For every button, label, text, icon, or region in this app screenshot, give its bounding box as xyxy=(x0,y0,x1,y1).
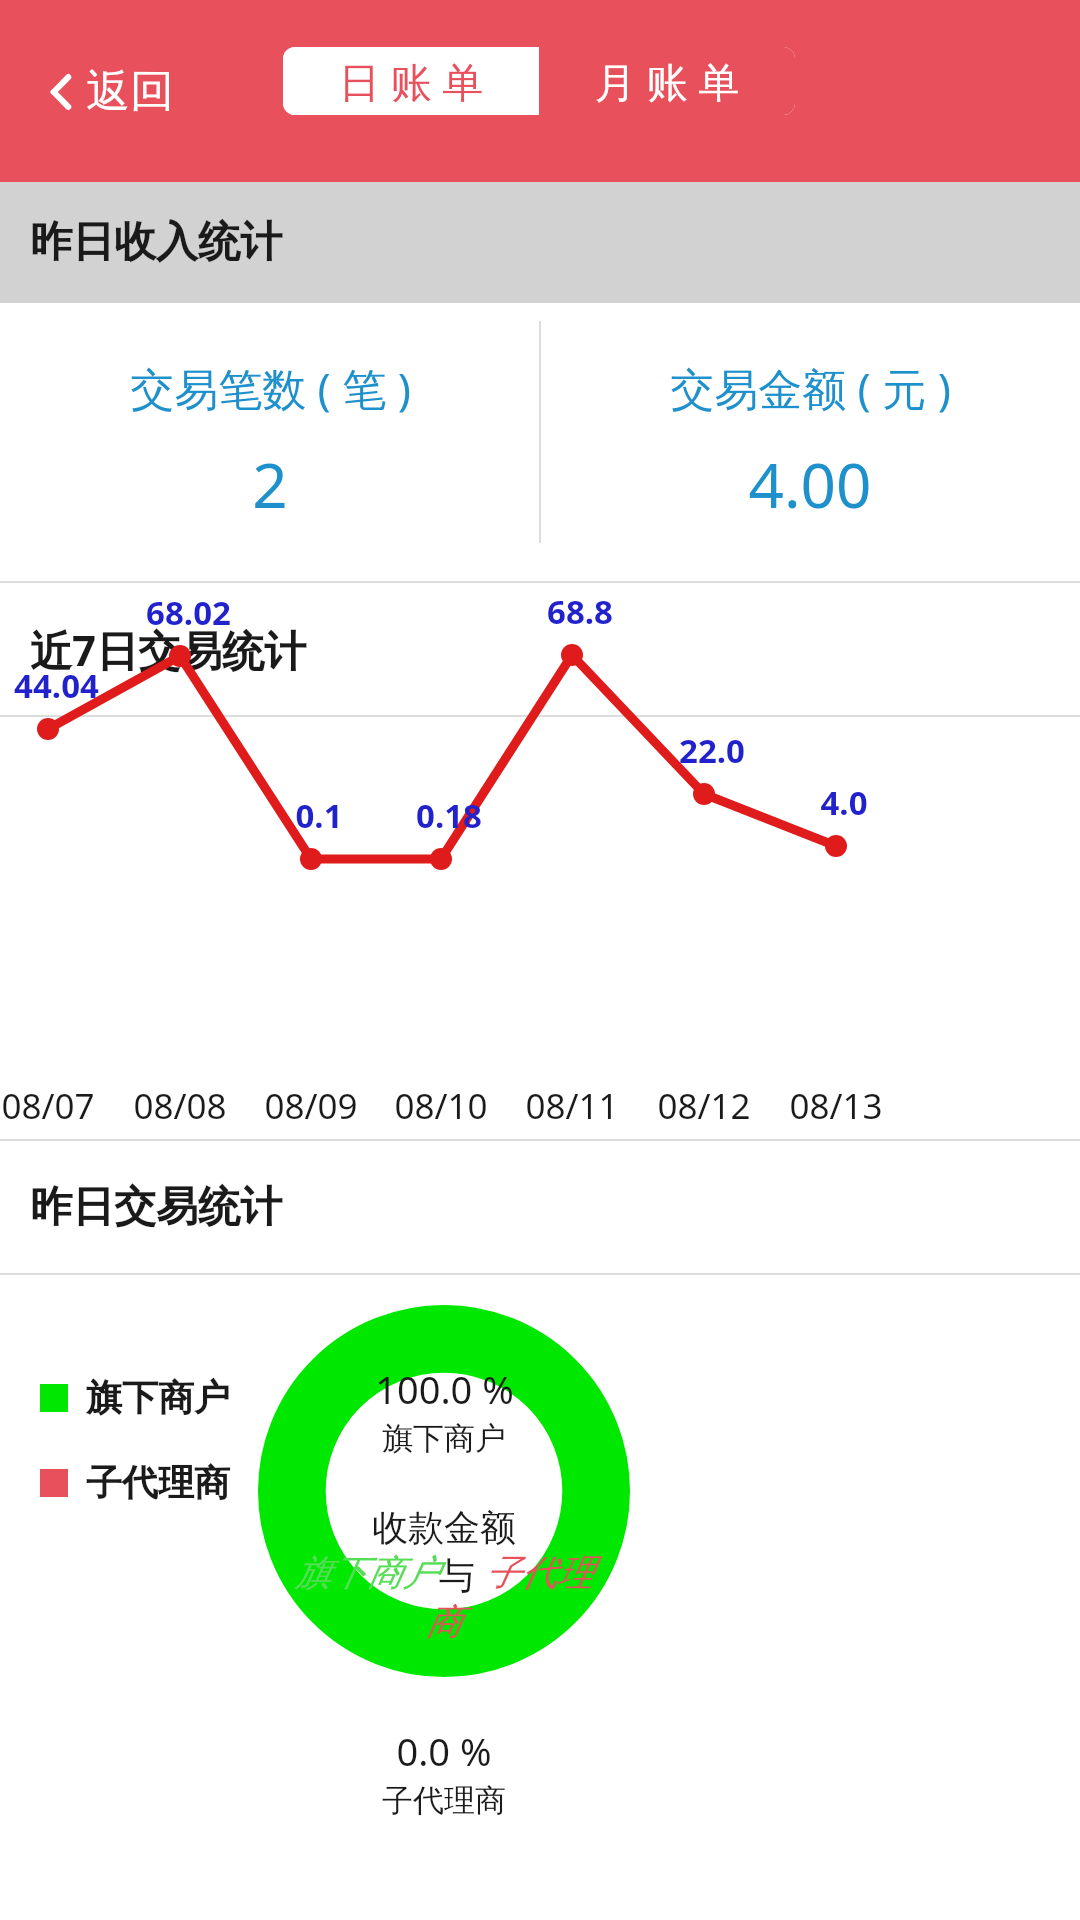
staticText: 近7日交易统计 xyxy=(30,621,307,678)
staticText: 与 xyxy=(439,1550,485,1599)
staticText: 08/08 xyxy=(133,1082,227,1130)
button[interactable]: 交易金额 ( 元 ) xyxy=(540,303,1080,581)
staticText: 昨日收入统计 xyxy=(30,216,282,269)
staticText: 月 账 单 xyxy=(595,53,740,109)
staticText: 08/11 xyxy=(525,1082,619,1130)
staticText: 子代理 xyxy=(485,1550,593,1595)
staticText: 4.0 xyxy=(820,780,868,825)
staticText: 68.02 xyxy=(146,590,231,635)
staticText: 2 xyxy=(252,442,288,526)
staticText: 08/10 xyxy=(394,1082,488,1130)
staticText: 子代理商 xyxy=(382,1781,506,1820)
staticText: 0.18 xyxy=(416,793,482,838)
button[interactable]: 子代理商 xyxy=(40,1460,230,1505)
staticText: 08/12 xyxy=(657,1082,751,1130)
staticText: 4.00 xyxy=(748,442,872,526)
button[interactable]: 月 账 单 xyxy=(539,47,795,115)
staticText: 旗下商户 xyxy=(86,1375,230,1420)
staticText: 交易金额 ( 元 ) xyxy=(670,358,951,418)
staticText: 0.0 % xyxy=(396,1725,492,1777)
button[interactable]: 返回 xyxy=(40,54,182,129)
button[interactable] xyxy=(258,1305,630,1677)
staticText: 100.0 % xyxy=(375,1363,514,1415)
staticText: 日 账 单 xyxy=(339,53,484,109)
staticText: 22.0 xyxy=(679,728,745,773)
staticText: 旗下商户 xyxy=(295,1550,439,1595)
staticText: 商 xyxy=(426,1599,462,1644)
staticText: 交易笔数 ( 笔 ) xyxy=(130,358,411,418)
staticText: 08/13 xyxy=(789,1082,883,1130)
button[interactable]: 交易笔数 ( 笔 ) xyxy=(0,303,540,581)
staticText: 08/09 xyxy=(264,1082,358,1130)
staticText: 08/07 xyxy=(1,1082,95,1130)
staticText: 收款金额 xyxy=(372,1505,516,1550)
staticText: 昨日交易统计 xyxy=(30,1181,282,1234)
staticText: 子代理商 xyxy=(86,1460,230,1505)
button[interactable]: 日 账 单 xyxy=(283,47,539,115)
staticText: 44.04 xyxy=(14,663,99,708)
staticText: 68.8 xyxy=(547,589,613,634)
button[interactable]: 旗下商户 xyxy=(40,1375,230,1420)
staticText: 0.1 xyxy=(295,793,343,838)
staticText: 返回 xyxy=(86,64,174,119)
staticText: 旗下商户 xyxy=(382,1419,506,1458)
